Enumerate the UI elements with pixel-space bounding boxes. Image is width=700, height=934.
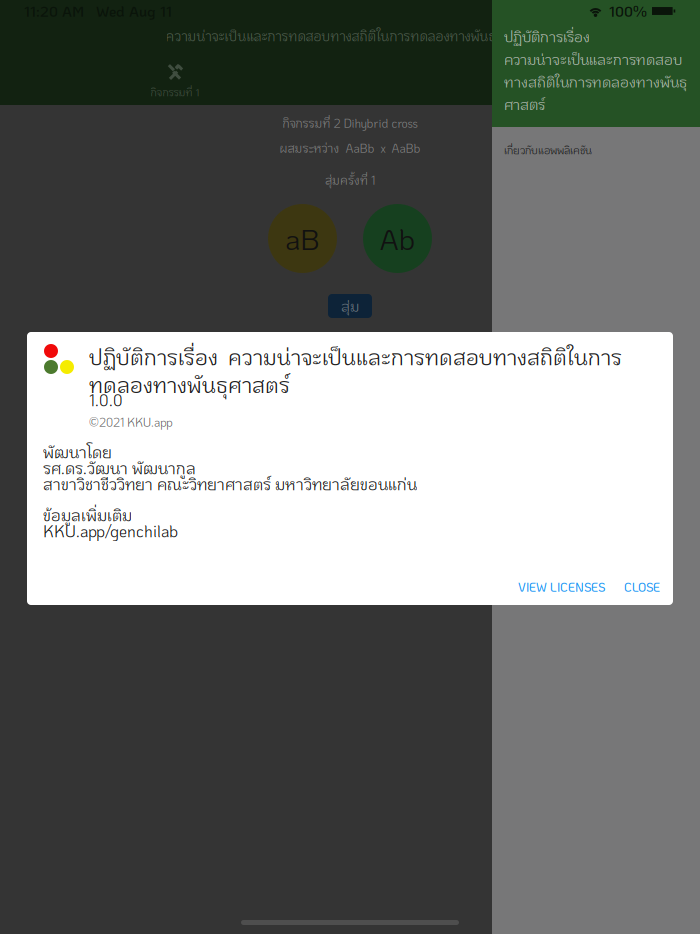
staticText: สุ่ม [341, 296, 359, 316]
staticText: aB [285, 219, 320, 257]
staticText: กิจกรรมที่ 1 [150, 85, 199, 99]
staticText: พัฒนาโดย [43, 442, 112, 462]
staticText: รศ.ดร.วัฒนา พัฒนากูล [43, 458, 196, 478]
button[interactable]: CLOSE [616, 572, 668, 602]
staticText: VIEW LICENSES [518, 579, 605, 595]
button[interactable]: สุ่ม [328, 294, 372, 318]
button[interactable]: เกี่ยวกับแอพพลิเคชัน [492, 127, 700, 173]
staticText: ปฏิบัติการเรื่อง ความน่าจะเป็นและการทดสอ… [89, 343, 622, 398]
staticText: ปฏิบัติการเรื่อง ความน่าจะเป็นและการทดสอ… [504, 27, 687, 114]
staticText: CLOSE [624, 579, 660, 595]
button[interactable]: VIEW LICENSES [510, 572, 613, 602]
staticText: ความน่าจะเป็นและการทดสอบทางสถิติในการทดล… [165, 27, 534, 45]
staticText: กิจกรรมที่ 2 Dihybrid cross [282, 115, 417, 131]
staticText: กิจกรรมที่ 2 [499, 85, 550, 99]
button[interactable]: กิจกรรมที่ 2 [350, 57, 700, 105]
staticText: สาขาวิชาชีววิทยา คณะวิทยาศาสตร์ มหาวิทยา… [43, 474, 417, 494]
staticText: 1.0.0 [89, 390, 123, 410]
staticText: 100% [609, 1, 647, 21]
staticText: สุ่มครั้งที่ 1 [325, 172, 375, 188]
staticText: ผสมระหว่าง AaBb x AaBb [279, 140, 420, 156]
button[interactable]: กิจกรรมที่ 1 [0, 57, 350, 105]
staticText: ข้อมูลเพิ่มเติม [43, 505, 132, 525]
staticText: 11:20 AM Wed Aug 11 [24, 1, 172, 21]
staticText: ©2021 KKU.app [89, 414, 173, 430]
staticText: KKU.app/genchilab [43, 521, 178, 541]
staticText: เกี่ยวกับแอพพลิเคชัน [504, 143, 592, 157]
staticText: Ab [379, 219, 415, 257]
